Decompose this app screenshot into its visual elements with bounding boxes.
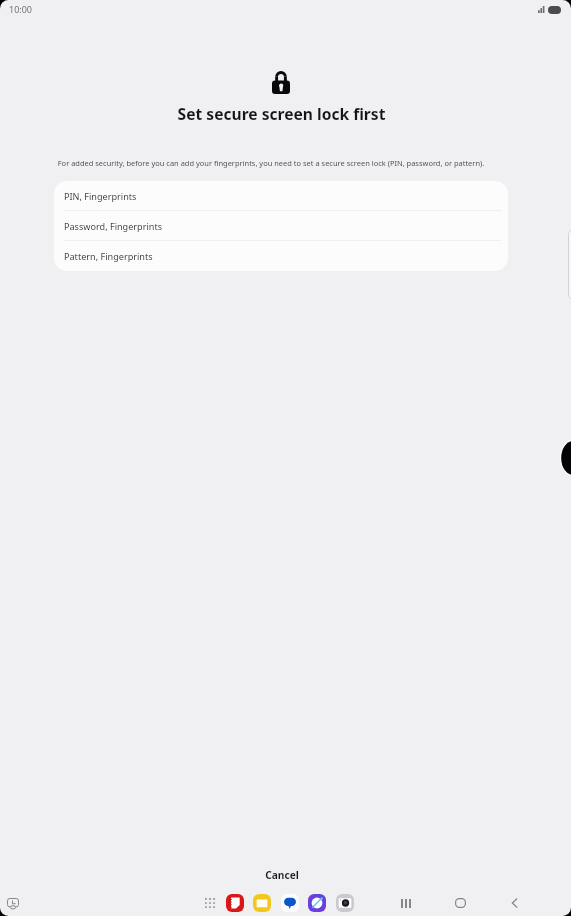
- button[interactable]: PIN, Fingerprints: [54, 181, 508, 211]
- button[interactable]: App: [336, 894, 354, 912]
- button[interactable]: Password, Fingerprints: [54, 211, 508, 241]
- button[interactable]: App: [226, 894, 244, 912]
- button[interactable]: Cancel: [0, 859, 571, 891]
- staticText: Pattern, Fingerprints: [64, 250, 153, 262]
- staticText: PIN, Fingerprints: [64, 190, 137, 202]
- button[interactable]: Recent app: [7, 898, 19, 909]
- button[interactable]: Recents: [398, 893, 414, 913]
- staticText: Set secure screen lock first: [0, 103, 563, 124]
- staticText: 10:00: [9, 3, 33, 15]
- button[interactable]: App: [253, 894, 271, 912]
- button[interactable]: Pattern, Fingerprints: [54, 241, 508, 271]
- button[interactable]: App: [281, 894, 299, 912]
- button[interactable]: App: [308, 894, 326, 912]
- staticText: Cancel: [0, 868, 564, 882]
- staticText: For added security, before you can add y…: [14, 158, 528, 168]
- button[interactable]: Back: [506, 893, 522, 913]
- staticText: Password, Fingerprints: [64, 220, 163, 232]
- button[interactable]: Home: [452, 893, 468, 913]
- button[interactable]: Apps: [205, 898, 215, 908]
